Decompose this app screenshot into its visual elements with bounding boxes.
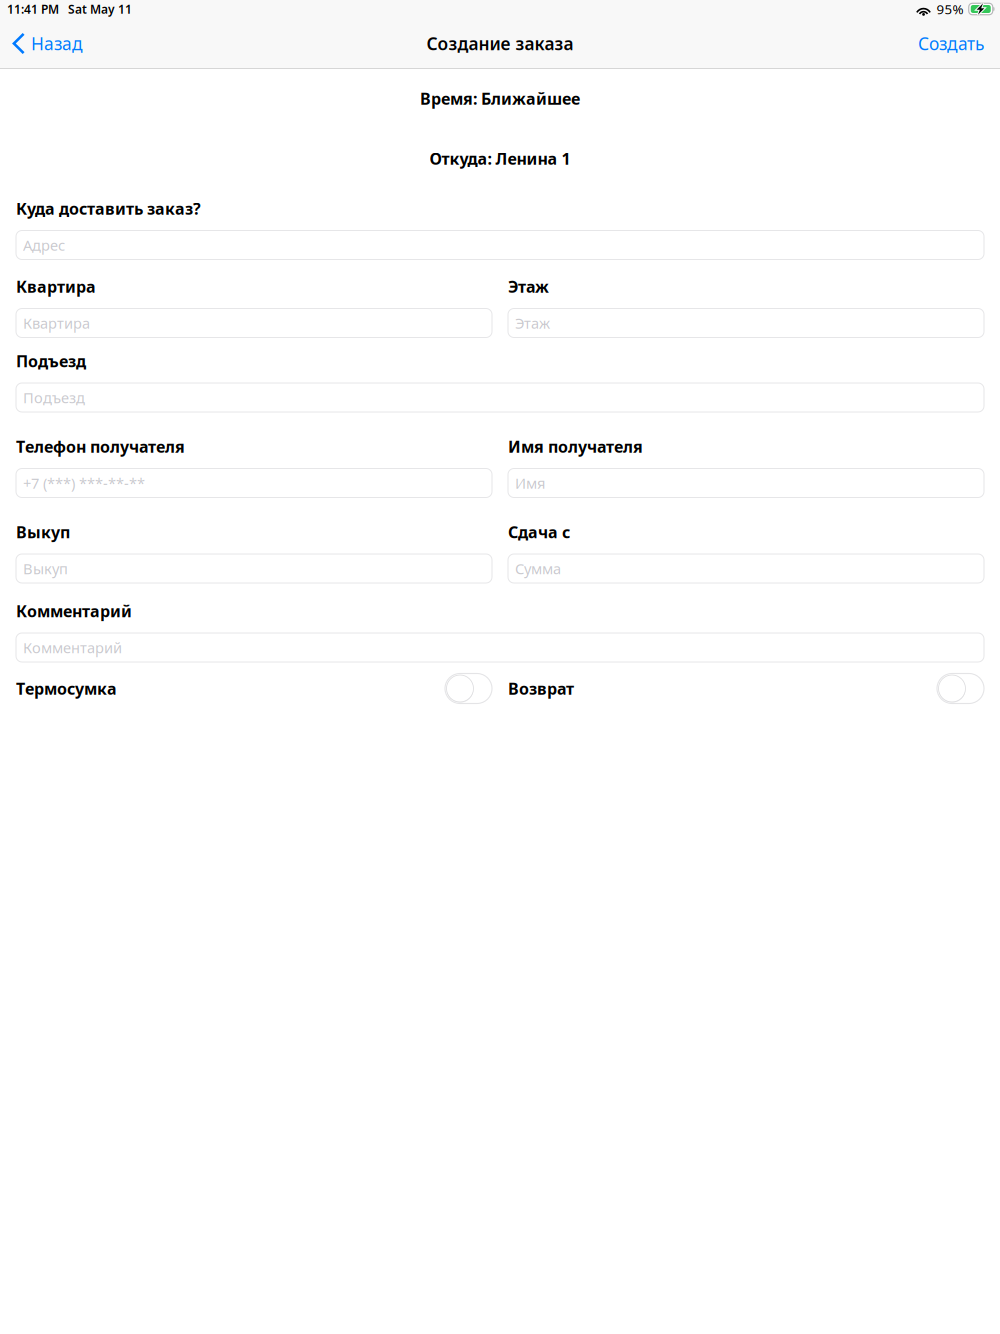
- staticText: Комментарий: [23, 638, 122, 657]
- staticText: Квартира: [23, 313, 90, 333]
- button[interactable]: Термосумка: [16, 673, 492, 703]
- staticText: Имя: [515, 473, 545, 493]
- button[interactable]: +7 (***) ***-**-**: [16, 468, 492, 497]
- button[interactable]: Возврат: [508, 673, 984, 703]
- staticText: 95%: [936, 0, 963, 18]
- button[interactable]: Подъезд: [16, 383, 984, 412]
- button[interactable]: Имя: [508, 468, 984, 497]
- staticText: Выкуп: [16, 521, 70, 543]
- staticText: Этаж: [508, 276, 549, 297]
- staticText: Этаж: [515, 313, 550, 333]
- staticText: Квартира: [16, 276, 96, 297]
- staticText: Имя получателя: [508, 436, 643, 457]
- staticText: Выкуп: [23, 559, 68, 578]
- staticText: +7 (***) ***-**-**: [23, 473, 145, 493]
- staticText: Термосумка: [16, 678, 117, 699]
- staticText: Sat May 11: [68, 1, 132, 17]
- staticText: Комментарий: [16, 600, 132, 622]
- staticText: 11:41 PM: [7, 1, 59, 17]
- staticText: Время: Ближайшее: [420, 88, 580, 109]
- staticText: Телефон получателя: [16, 436, 185, 457]
- button[interactable]: Сумма: [508, 554, 984, 583]
- button[interactable]: Создать: [908, 20, 1000, 66]
- staticText: Создать: [918, 32, 984, 55]
- button[interactable]: Квартира: [16, 308, 492, 337]
- staticText: Адрес: [23, 235, 65, 255]
- button[interactable]: Комментарий: [16, 633, 984, 662]
- staticText: Подъезд: [16, 350, 86, 372]
- staticText: Назад: [31, 32, 83, 55]
- button[interactable]: Выкуп: [16, 554, 492, 583]
- staticText: Возврат: [508, 678, 574, 699]
- button[interactable]: Этаж: [508, 308, 984, 337]
- staticText: Куда доставить заказ?: [16, 198, 201, 219]
- staticText: Создание заказа: [426, 32, 573, 55]
- button[interactable]: Адрес: [16, 230, 984, 259]
- staticText: Сумма: [515, 559, 561, 578]
- staticText: Сдача с: [508, 521, 570, 543]
- button[interactable]: Назад: [0, 20, 93, 66]
- staticText: Подъезд: [23, 388, 85, 407]
- staticText: Откуда: Ленина 1: [429, 148, 570, 169]
